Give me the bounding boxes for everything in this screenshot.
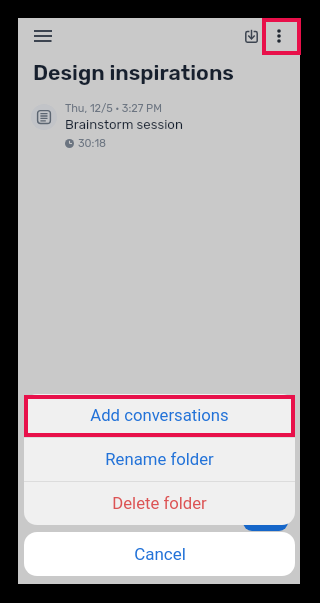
button[interactable]: New recording — [243, 486, 288, 531]
staticText: Rename folder — [105, 450, 214, 470]
button[interactable]: Delete folder — [24, 482, 295, 525]
button[interactable]: Menu — [23, 16, 63, 56]
button[interactable]: Download — [231, 16, 271, 56]
staticText: Thu, 12/5 · 3:27 PM — [65, 102, 162, 115]
button[interactable]: Cancel — [24, 532, 295, 576]
staticText: Add conversations — [90, 406, 229, 426]
staticText: Delete folder — [112, 494, 207, 514]
staticText: Design inspirations — [33, 60, 234, 85]
staticText: Brainstorm session — [65, 117, 183, 133]
staticText: 30:18 — [78, 137, 107, 150]
button[interactable]: Thu, 12/5 · 3:27 PM — [18, 100, 300, 158]
button[interactable]: Rename folder — [24, 438, 295, 481]
staticText: Cancel — [134, 544, 186, 564]
button[interactable]: More options — [259, 16, 299, 56]
button[interactable]: Add conversations — [24, 394, 295, 437]
